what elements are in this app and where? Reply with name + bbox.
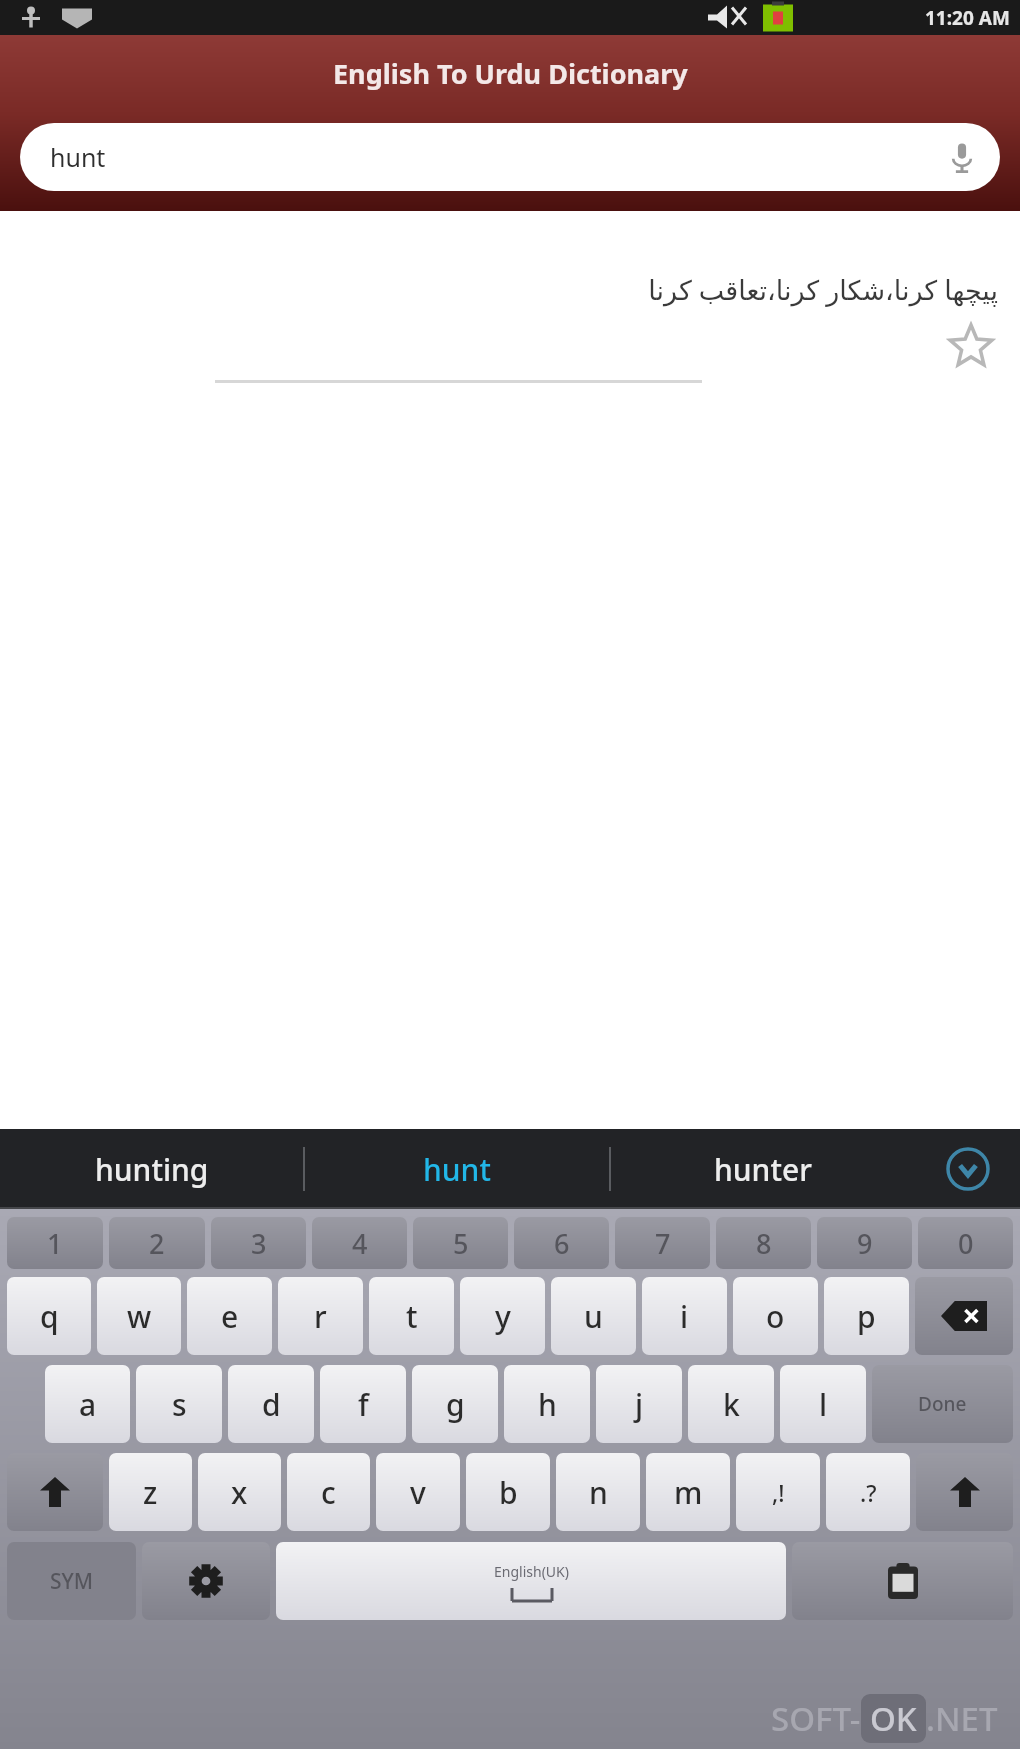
button[interactable]: l (780, 1365, 866, 1443)
button[interactable]: Voice search (940, 135, 984, 179)
staticText: i (680, 1296, 689, 1337)
staticText: k (723, 1384, 740, 1425)
button[interactable]: 9 (817, 1217, 912, 1269)
staticText: 8 (756, 1225, 772, 1262)
button[interactable]: r (278, 1277, 363, 1355)
staticText: o (766, 1296, 785, 1337)
staticText: e (221, 1296, 239, 1337)
staticText: h (538, 1384, 557, 1425)
staticText: p (857, 1296, 876, 1337)
staticText: d (262, 1384, 281, 1425)
button[interactable]: k (688, 1365, 774, 1443)
staticText: ,! (772, 1477, 785, 1508)
button[interactable]: More suggestions (915, 1129, 1020, 1209)
staticText: a (79, 1384, 97, 1425)
button[interactable]: SYM (7, 1542, 136, 1620)
staticText: f (358, 1384, 369, 1425)
staticText: c (321, 1472, 336, 1513)
staticText: z (143, 1472, 158, 1513)
button[interactable]: 1 (7, 1217, 103, 1269)
button[interactable]: a (45, 1365, 130, 1443)
button[interactable]: ,! (736, 1453, 820, 1531)
button[interactable]: j (596, 1365, 682, 1443)
staticText: x (231, 1472, 248, 1513)
staticText: English(UK) (494, 1562, 569, 1581)
button[interactable]: n (556, 1453, 640, 1531)
staticText: 4 (352, 1225, 368, 1262)
button[interactable]: e (187, 1277, 272, 1355)
button[interactable]: g (412, 1365, 498, 1443)
button[interactable]: Backspace (915, 1277, 1013, 1355)
button[interactable]: 6 (514, 1217, 609, 1269)
staticText: 11:20 AM (925, 5, 1010, 31)
staticText: r (314, 1296, 327, 1337)
button[interactable]: q (7, 1277, 91, 1355)
button[interactable]: 7 (615, 1217, 710, 1269)
staticText: b (499, 1472, 518, 1513)
staticText: y (495, 1296, 511, 1337)
button[interactable]: t (369, 1277, 454, 1355)
staticText: n (589, 1472, 608, 1513)
button[interactable]: m (646, 1453, 730, 1531)
button[interactable]: u (551, 1277, 636, 1355)
staticText: q (40, 1296, 59, 1337)
staticText: Done (918, 1391, 967, 1417)
button[interactable]: z (109, 1453, 192, 1531)
button[interactable]: o (733, 1277, 818, 1355)
button[interactable]: Done (872, 1365, 1013, 1443)
button[interactable]: 3 (211, 1217, 306, 1269)
staticText: g (446, 1384, 465, 1425)
button[interactable]: hunter (611, 1129, 915, 1209)
button[interactable]: hunt (20, 123, 1000, 191)
staticText: English To Urdu Dictionary (333, 55, 688, 92)
button[interactable]: Clipboard (792, 1542, 1013, 1620)
staticText: SOFT- (771, 1696, 861, 1741)
button[interactable]: Add to favourites (944, 320, 998, 374)
button[interactable]: .? (826, 1453, 910, 1531)
staticText: 2 (149, 1225, 165, 1262)
button[interactable]: b (466, 1453, 550, 1531)
button[interactable]: Space (276, 1542, 786, 1620)
staticText: v (410, 1472, 426, 1513)
button[interactable]: 4 (312, 1217, 407, 1269)
button[interactable]: hunt (305, 1129, 609, 1209)
staticText: .NET (926, 1696, 998, 1741)
button[interactable]: Shift (7, 1453, 103, 1531)
staticText: l (819, 1384, 828, 1425)
staticText: 9 (857, 1225, 873, 1262)
button[interactable]: 0 (918, 1217, 1013, 1269)
staticText: 5 (453, 1225, 469, 1262)
staticText: hunt (423, 1149, 491, 1190)
staticText: 3 (251, 1225, 267, 1262)
button[interactable]: 5 (413, 1217, 508, 1269)
staticText: .? (860, 1477, 877, 1508)
staticText: 1 (47, 1225, 63, 1262)
staticText: 6 (554, 1225, 570, 1262)
staticText: hunter (714, 1149, 812, 1190)
button[interactable]: h (504, 1365, 590, 1443)
button[interactable]: 8 (716, 1217, 811, 1269)
button[interactable]: hunting (0, 1129, 303, 1209)
staticText: hunting (95, 1149, 209, 1190)
button[interactable]: 2 (109, 1217, 205, 1269)
button[interactable]: Keyboard settings (142, 1542, 270, 1620)
button[interactable]: c (287, 1453, 370, 1531)
button[interactable]: p (824, 1277, 909, 1355)
button[interactable]: i (642, 1277, 727, 1355)
button[interactable]: y (460, 1277, 545, 1355)
staticText: w (127, 1296, 152, 1337)
staticText: پیچھا کرنا،شکار کرنا،تعاقب کرنا (0, 271, 998, 308)
staticText: SYM (50, 1567, 94, 1596)
staticText: OK (870, 1696, 917, 1741)
staticText: 7 (655, 1225, 671, 1262)
button[interactable]: x (198, 1453, 281, 1531)
staticText: j (635, 1384, 644, 1425)
button[interactable]: w (97, 1277, 181, 1355)
button[interactable]: s (136, 1365, 222, 1443)
button[interactable]: Shift (916, 1453, 1013, 1531)
button[interactable]: d (228, 1365, 314, 1443)
staticText: s (172, 1384, 187, 1425)
button[interactable]: f (320, 1365, 406, 1443)
staticText: hunt (50, 140, 106, 174)
button[interactable]: v (376, 1453, 460, 1531)
